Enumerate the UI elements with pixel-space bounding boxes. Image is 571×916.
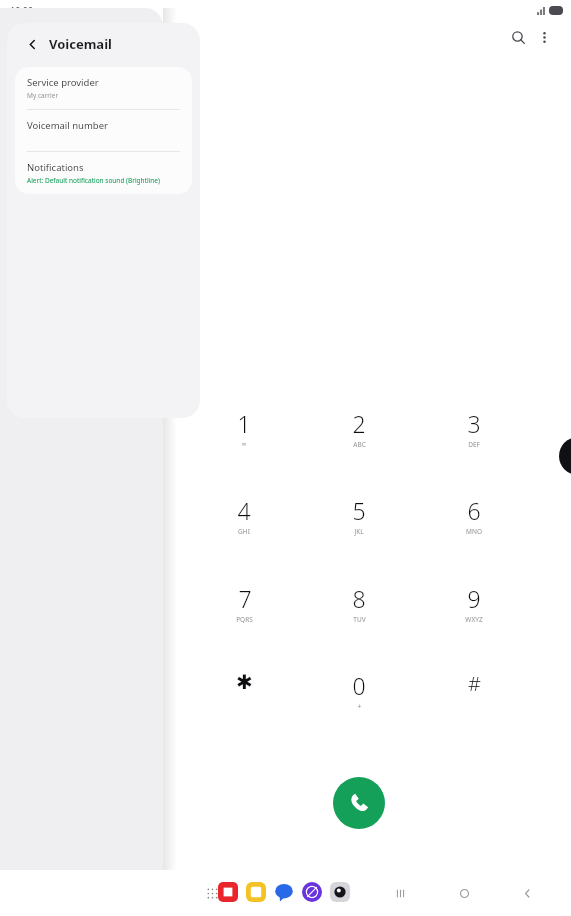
staticText: TUV xyxy=(353,615,366,624)
button[interactable]: More options xyxy=(531,24,557,50)
staticText: JKL xyxy=(354,527,364,536)
button[interactable]: Internet xyxy=(302,882,322,902)
staticText: Voicemail number xyxy=(27,119,108,132)
button[interactable]: Messages xyxy=(274,882,294,902)
button[interactable]: Notes xyxy=(218,882,238,902)
staticText: PQRS xyxy=(236,615,253,624)
button[interactable]: Service provider xyxy=(15,67,192,110)
staticText: 2 xyxy=(352,408,366,439)
staticText: 10:00 xyxy=(10,4,34,16)
button[interactable]: 0 xyxy=(321,670,397,736)
button[interactable]: Call xyxy=(333,777,385,829)
button[interactable]: Gallery xyxy=(246,882,266,902)
staticText: 4 xyxy=(237,495,251,526)
button[interactable]: ✱ xyxy=(206,670,282,736)
button[interactable]: Search xyxy=(505,24,531,50)
button[interactable]: 1 xyxy=(206,408,282,474)
button[interactable]: 7 xyxy=(206,583,282,649)
staticText: 3 xyxy=(467,408,481,439)
button[interactable]: Home xyxy=(451,880,477,906)
staticText: 1 xyxy=(237,408,251,439)
staticText: Voicemail xyxy=(49,35,112,53)
button[interactable]: 6 xyxy=(436,495,512,561)
button[interactable]: 3 xyxy=(436,408,512,474)
button[interactable]: Recents xyxy=(387,880,413,906)
button[interactable]: 9 xyxy=(436,583,512,649)
button[interactable]: # xyxy=(436,670,512,736)
button[interactable]: Camera xyxy=(330,882,350,902)
staticText: + xyxy=(357,702,362,712)
staticText: ABC xyxy=(353,440,366,449)
staticText: GHI xyxy=(238,527,250,536)
staticText: 6 xyxy=(467,495,481,526)
staticText: MNO xyxy=(466,527,482,536)
button[interactable]: 5 xyxy=(321,495,397,561)
staticText: ∞ xyxy=(241,440,247,448)
staticText: WXYZ xyxy=(465,615,483,624)
button[interactable]: Apps xyxy=(203,884,221,902)
button[interactable]: 2 xyxy=(321,408,397,474)
staticText: 5 xyxy=(352,495,366,526)
staticText: 7 xyxy=(238,583,252,614)
staticText: ✱ xyxy=(236,670,253,693)
staticText: DEF xyxy=(468,440,480,449)
staticText: Alert: Default notification sound (Brigh… xyxy=(27,176,160,185)
staticText: My carrier xyxy=(27,91,59,100)
button[interactable]: Back xyxy=(514,880,540,906)
button[interactable]: 8 xyxy=(321,583,397,649)
button[interactable]: Voicemail number xyxy=(15,110,192,152)
staticText: # xyxy=(468,670,481,697)
staticText: 0 xyxy=(352,670,366,701)
button[interactable]: 4 xyxy=(206,495,282,561)
staticText: Service provider xyxy=(27,76,99,89)
staticText: Notifications xyxy=(27,161,84,174)
staticText: 9 xyxy=(467,583,481,614)
staticText: 8 xyxy=(352,583,366,614)
button[interactable]: Back xyxy=(21,33,43,55)
button[interactable]: Notifications xyxy=(15,152,192,194)
